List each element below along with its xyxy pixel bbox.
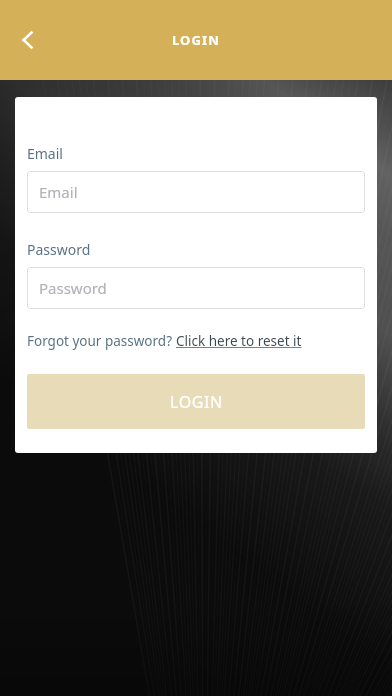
button[interactable]: Back [4, 16, 52, 64]
staticText: Password [39, 278, 107, 298]
button[interactable]: Password [27, 267, 365, 309]
staticText: LOGIN [170, 391, 223, 413]
staticText: Forgot your password? [27, 332, 176, 350]
button[interactable]: Email [27, 171, 365, 213]
staticText: LOGIN [172, 31, 220, 49]
staticText: Email [27, 144, 63, 163]
button[interactable]: LOGIN [27, 374, 365, 429]
staticText: Click here to reset it [176, 332, 302, 350]
button[interactable]: Click here to reset it [176, 332, 302, 350]
staticText: Email [39, 182, 78, 202]
staticText: Password [27, 240, 91, 259]
